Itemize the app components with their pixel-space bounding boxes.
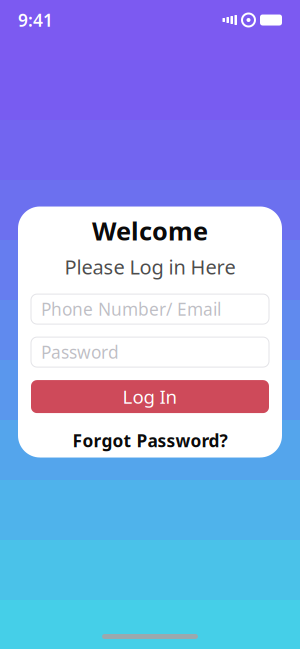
staticText: 9:41 bbox=[18, 8, 53, 31]
staticText: Phone Number/ Email bbox=[41, 298, 221, 321]
staticText: Log In bbox=[122, 384, 177, 409]
staticText: Password bbox=[41, 341, 119, 364]
staticText: Welcome bbox=[92, 214, 208, 247]
staticText: Please Log in Here bbox=[64, 253, 235, 280]
button[interactable]: Phone Number/ Email bbox=[31, 294, 269, 324]
button[interactable]: Log In bbox=[31, 380, 269, 413]
button[interactable]: Password bbox=[31, 337, 269, 367]
staticText: Forgot Password? bbox=[72, 429, 227, 452]
button[interactable]: Forgot Password? bbox=[60, 424, 239, 457]
